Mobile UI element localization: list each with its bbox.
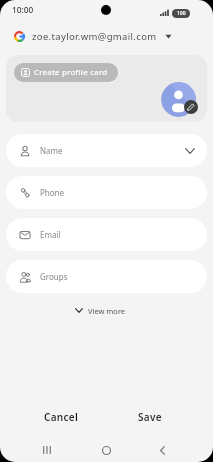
staticText: Name xyxy=(40,145,63,156)
button[interactable]: Email xyxy=(6,218,207,251)
button[interactable] xyxy=(98,442,114,458)
staticText: Phone xyxy=(40,187,65,198)
staticText: 10:00 xyxy=(12,4,34,15)
button[interactable]: zoe.taylor.wm@gmail.com xyxy=(8,26,172,46)
button[interactable] xyxy=(161,82,196,117)
staticText: Save xyxy=(138,410,162,424)
staticText: View more xyxy=(88,306,126,316)
button[interactable]: Save xyxy=(122,407,178,427)
staticText: Cancel xyxy=(44,410,79,424)
button[interactable]: Cancel xyxy=(33,407,89,427)
staticText: Create profile card xyxy=(34,67,108,78)
staticText: Groups xyxy=(40,271,68,282)
button[interactable]: Groups xyxy=(6,260,207,293)
button[interactable] xyxy=(154,442,170,458)
staticText: 100 xyxy=(177,10,186,17)
button[interactable]: Phone xyxy=(6,176,207,209)
staticText: Email xyxy=(40,229,61,240)
button[interactable]: Name xyxy=(6,134,207,167)
button[interactable]: View more xyxy=(70,302,131,319)
button[interactable]: Create profile card xyxy=(14,63,118,82)
staticText: zoe.taylor.wm@gmail.com xyxy=(32,30,157,43)
button[interactable] xyxy=(184,100,198,114)
button[interactable] xyxy=(39,442,55,458)
